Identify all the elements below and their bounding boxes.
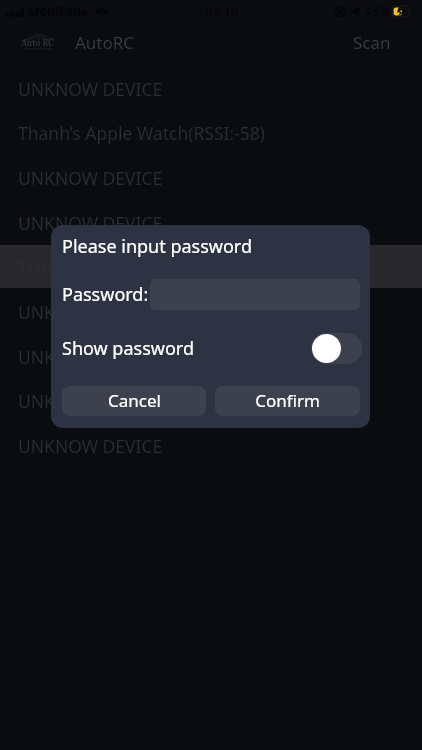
staticText: UNKNOW DEVICE bbox=[18, 211, 163, 235]
staticText: UNKNOW DEVICE bbox=[18, 166, 163, 190]
button[interactable]: Scan bbox=[345, 24, 399, 57]
staticText: Thanh’s Apple Watch(RSSI:-58) bbox=[18, 121, 266, 145]
staticText: MobiFone bbox=[28, 3, 89, 20]
button[interactable]: UNKNOW DEVICE bbox=[0, 201, 422, 244]
button[interactable]: UNKNOW DEVICE bbox=[0, 424, 422, 467]
button[interactable]: Show password toggle bbox=[311, 333, 362, 364]
staticText: Cancel bbox=[108, 389, 161, 412]
staticText: UNKNOW DEVICE bbox=[18, 345, 163, 369]
staticText: Confirm bbox=[255, 389, 320, 412]
button[interactable]: Thanh’s Apple Watch(RSSI:-58) bbox=[0, 111, 422, 154]
button[interactable]: Confirm bbox=[215, 386, 360, 416]
button[interactable]: UNKNOW DEVICE bbox=[0, 335, 422, 378]
staticText: UNKNOW DEVICE bbox=[18, 434, 163, 458]
button[interactable]: UNKNOW DEVICE bbox=[0, 379, 422, 422]
staticText: Auto RC bbox=[21, 37, 54, 48]
button[interactable]: UNKNOW DEVICE bbox=[0, 156, 422, 199]
staticText: Password: bbox=[62, 282, 149, 307]
button[interactable]: UNKNOW DEVICE bbox=[0, 290, 422, 333]
staticText: UNKNOW DEVICE bbox=[18, 300, 163, 324]
staticText: AutoRC bbox=[75, 31, 135, 54]
staticText: THANH’S DEVICE bbox=[18, 255, 156, 279]
staticText: Scan bbox=[353, 31, 391, 54]
staticText: Show password bbox=[62, 336, 194, 361]
staticText: UNKNOW DEVICE bbox=[18, 77, 163, 101]
button[interactable]: Cancel bbox=[62, 386, 206, 416]
button[interactable]: UNKNOW DEVICE bbox=[0, 67, 422, 110]
staticText: Please input password bbox=[62, 234, 252, 259]
button[interactable]: THANH’S DEVICE bbox=[0, 245, 422, 288]
staticText: UNKNOW DEVICE bbox=[18, 389, 163, 413]
